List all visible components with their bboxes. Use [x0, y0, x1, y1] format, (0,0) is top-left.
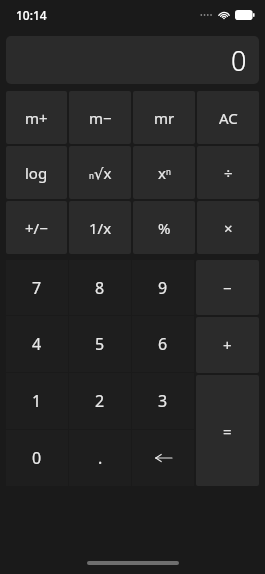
button[interactable]: 3 — [132, 373, 194, 429]
button[interactable]: log — [6, 146, 67, 199]
staticText: . — [98, 447, 103, 469]
staticText: 6 — [158, 333, 168, 355]
staticText: log — [25, 163, 48, 183]
staticText: 0 — [32, 447, 42, 469]
staticText: 1/x — [89, 218, 112, 238]
staticText: xn — [158, 163, 171, 183]
staticText: 8 — [95, 277, 105, 299]
staticText: 2 — [95, 390, 105, 412]
button[interactable]: + — [196, 317, 259, 373]
staticText: % — [158, 218, 171, 238]
button[interactable]: − — [196, 260, 259, 315]
staticText: mr — [154, 108, 175, 128]
button[interactable]: = — [196, 375, 259, 486]
staticText: 3 — [158, 390, 168, 412]
staticText: AC — [219, 108, 238, 128]
staticText: 0 — [231, 42, 247, 79]
staticText: n√x — [89, 163, 112, 183]
button[interactable]: 1/x — [69, 201, 131, 254]
staticText: +/− — [25, 218, 48, 238]
button[interactable]: 5 — [69, 316, 131, 372]
button[interactable]: n√x — [69, 146, 131, 199]
button[interactable]: m+ — [6, 91, 67, 144]
button[interactable]: Backspace — [132, 430, 194, 486]
button[interactable]: . — [69, 430, 131, 486]
button[interactable]: AC — [197, 91, 259, 144]
button[interactable]: 0 — [6, 36, 259, 84]
staticText: 5 — [95, 333, 105, 355]
staticText: 7 — [32, 277, 42, 299]
staticText: × — [224, 218, 233, 238]
button[interactable]: m− — [69, 91, 131, 144]
staticText: ÷ — [224, 163, 233, 183]
button[interactable]: × — [197, 201, 259, 254]
button[interactable]: mr — [133, 91, 195, 144]
staticText: − — [223, 278, 232, 298]
button[interactable]: 6 — [132, 316, 194, 372]
button[interactable]: 1 — [6, 373, 68, 429]
button[interactable]: 8 — [69, 260, 131, 315]
button[interactable]: +/− — [6, 201, 67, 254]
button[interactable]: 0 — [6, 430, 68, 486]
button[interactable]: % — [133, 201, 195, 254]
staticText: 10:14 — [16, 7, 47, 23]
button[interactable]: 7 — [6, 260, 68, 315]
staticText: 9 — [158, 277, 168, 299]
button[interactable]: 9 — [132, 260, 194, 315]
button[interactable]: xn — [133, 146, 195, 199]
staticText: + — [223, 335, 232, 355]
staticText: 4 — [32, 333, 42, 355]
staticText: 1 — [32, 390, 42, 412]
staticText: = — [223, 421, 232, 441]
button[interactable]: ÷ — [197, 146, 259, 199]
staticText: m− — [89, 108, 112, 128]
staticText: m+ — [25, 108, 48, 128]
button[interactable]: 2 — [69, 373, 131, 429]
button[interactable]: 4 — [6, 316, 68, 372]
